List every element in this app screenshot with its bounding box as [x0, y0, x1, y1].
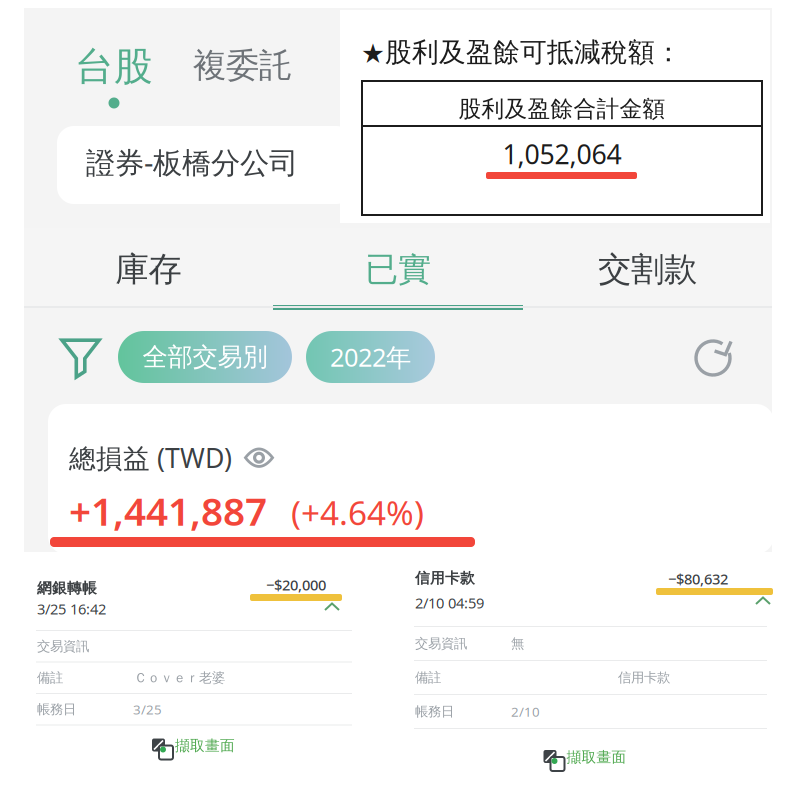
button[interactable]: Filter	[60, 338, 101, 379]
staticText: 複委託	[193, 45, 292, 86]
staticText: 3/25 16:42	[37, 599, 106, 618]
button[interactable]: 2022年	[306, 331, 435, 383]
staticText: 證券-板橋分公司	[86, 142, 298, 181]
staticText: 帳務日	[37, 701, 76, 717]
staticText: 備註	[37, 670, 63, 686]
button[interactable]: 台股	[75, 43, 153, 108]
button[interactable]: Refresh	[694, 338, 734, 378]
staticText: 庫存	[115, 249, 181, 290]
staticText: −$80,632	[668, 569, 728, 588]
staticText: 交易資訊	[37, 638, 89, 654]
button[interactable]: 證券-板橋分公司	[57, 126, 353, 204]
staticText: (+4.64%)	[291, 490, 424, 534]
staticText: +1,441,887	[69, 485, 267, 536]
button[interactable]: 交割款	[523, 228, 772, 308]
button[interactable]: 全部交易別	[118, 331, 292, 383]
staticText: 信用卡款	[415, 569, 475, 587]
staticText: 信用卡款	[618, 669, 670, 686]
staticText: 2/10	[511, 703, 540, 720]
staticText: 備註	[415, 669, 441, 686]
button[interactable]: 複委託	[193, 45, 292, 86]
button[interactable]: 庫存	[24, 228, 273, 308]
staticText: −$20,000	[266, 575, 326, 594]
staticText: 3/25	[133, 700, 162, 718]
staticText: 交易資訊	[415, 635, 467, 652]
staticText: 已實	[365, 249, 431, 290]
staticText: 2022年	[330, 340, 411, 374]
button[interactable]: 已實	[273, 228, 523, 308]
staticText: 網銀轉帳	[37, 579, 97, 597]
staticText: 台股	[75, 43, 153, 90]
staticText: 擷取畫面	[566, 748, 626, 766]
staticText: 股利及盈餘合計金額	[458, 95, 665, 123]
staticText: 總損益 (TWD)	[69, 440, 232, 475]
staticText: Ｃｏｖｅｒ老婆	[134, 670, 225, 686]
staticText: 交割款	[598, 249, 697, 290]
staticText: ★股利及盈餘可抵減稅額：	[361, 36, 682, 69]
staticText: 全部交易別	[142, 341, 267, 372]
staticText: 帳務日	[415, 703, 454, 720]
staticText: 擷取畫面	[175, 736, 235, 754]
staticText: 2/10 04:59	[415, 593, 484, 612]
staticText: 1,052,064	[502, 136, 621, 172]
staticText: 無	[511, 635, 524, 652]
